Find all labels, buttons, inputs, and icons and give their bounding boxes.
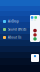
staticText: About Us bbox=[8, 36, 21, 39]
staticText: Sound Effects bbox=[8, 28, 26, 31]
staticText: AirDrop bbox=[8, 20, 19, 23]
button[interactable]: About Us bbox=[3, 35, 40, 40]
button[interactable]: Sound Effects bbox=[3, 27, 40, 32]
button[interactable]: AirDrop bbox=[3, 19, 40, 24]
